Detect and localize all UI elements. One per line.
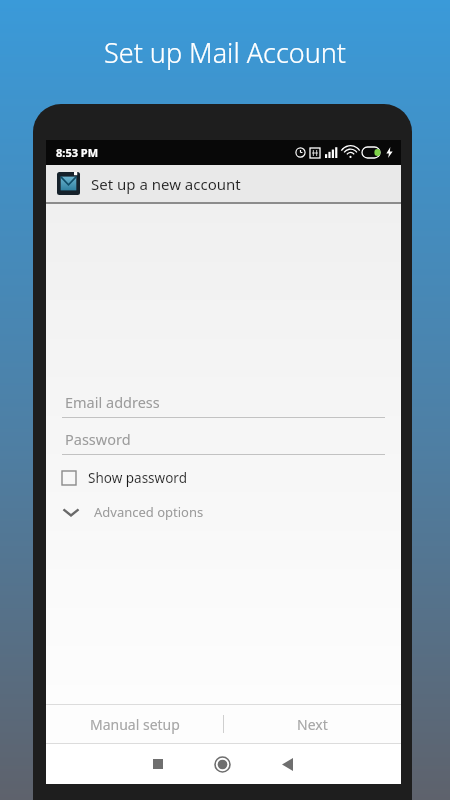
staticText: Password xyxy=(65,429,131,449)
staticText: Show password xyxy=(88,469,187,487)
other: Expand advanced options xyxy=(62,506,80,518)
button[interactable]: Set up a new account xyxy=(46,165,401,202)
staticText: Set up a new account xyxy=(91,174,241,194)
button[interactable]: Recent apps xyxy=(126,744,190,784)
button[interactable]: Manual setup xyxy=(46,705,223,743)
button[interactable]: Show password xyxy=(62,464,385,492)
button[interactable]: Back xyxy=(255,744,320,784)
staticText: Email address xyxy=(65,392,160,412)
staticText: Advanced options xyxy=(94,503,204,521)
button[interactable]: Next xyxy=(224,705,401,743)
staticText: Manual setup xyxy=(90,715,180,734)
button[interactable]: Expand advanced options xyxy=(62,499,385,525)
staticText: 8:53 PM xyxy=(56,145,99,160)
button[interactable]: Home xyxy=(190,744,255,784)
button[interactable]: Password xyxy=(62,429,385,455)
button[interactable]: Email address xyxy=(62,392,385,418)
staticText: Set up Mail Account xyxy=(104,34,347,71)
staticText: Next xyxy=(297,715,328,734)
